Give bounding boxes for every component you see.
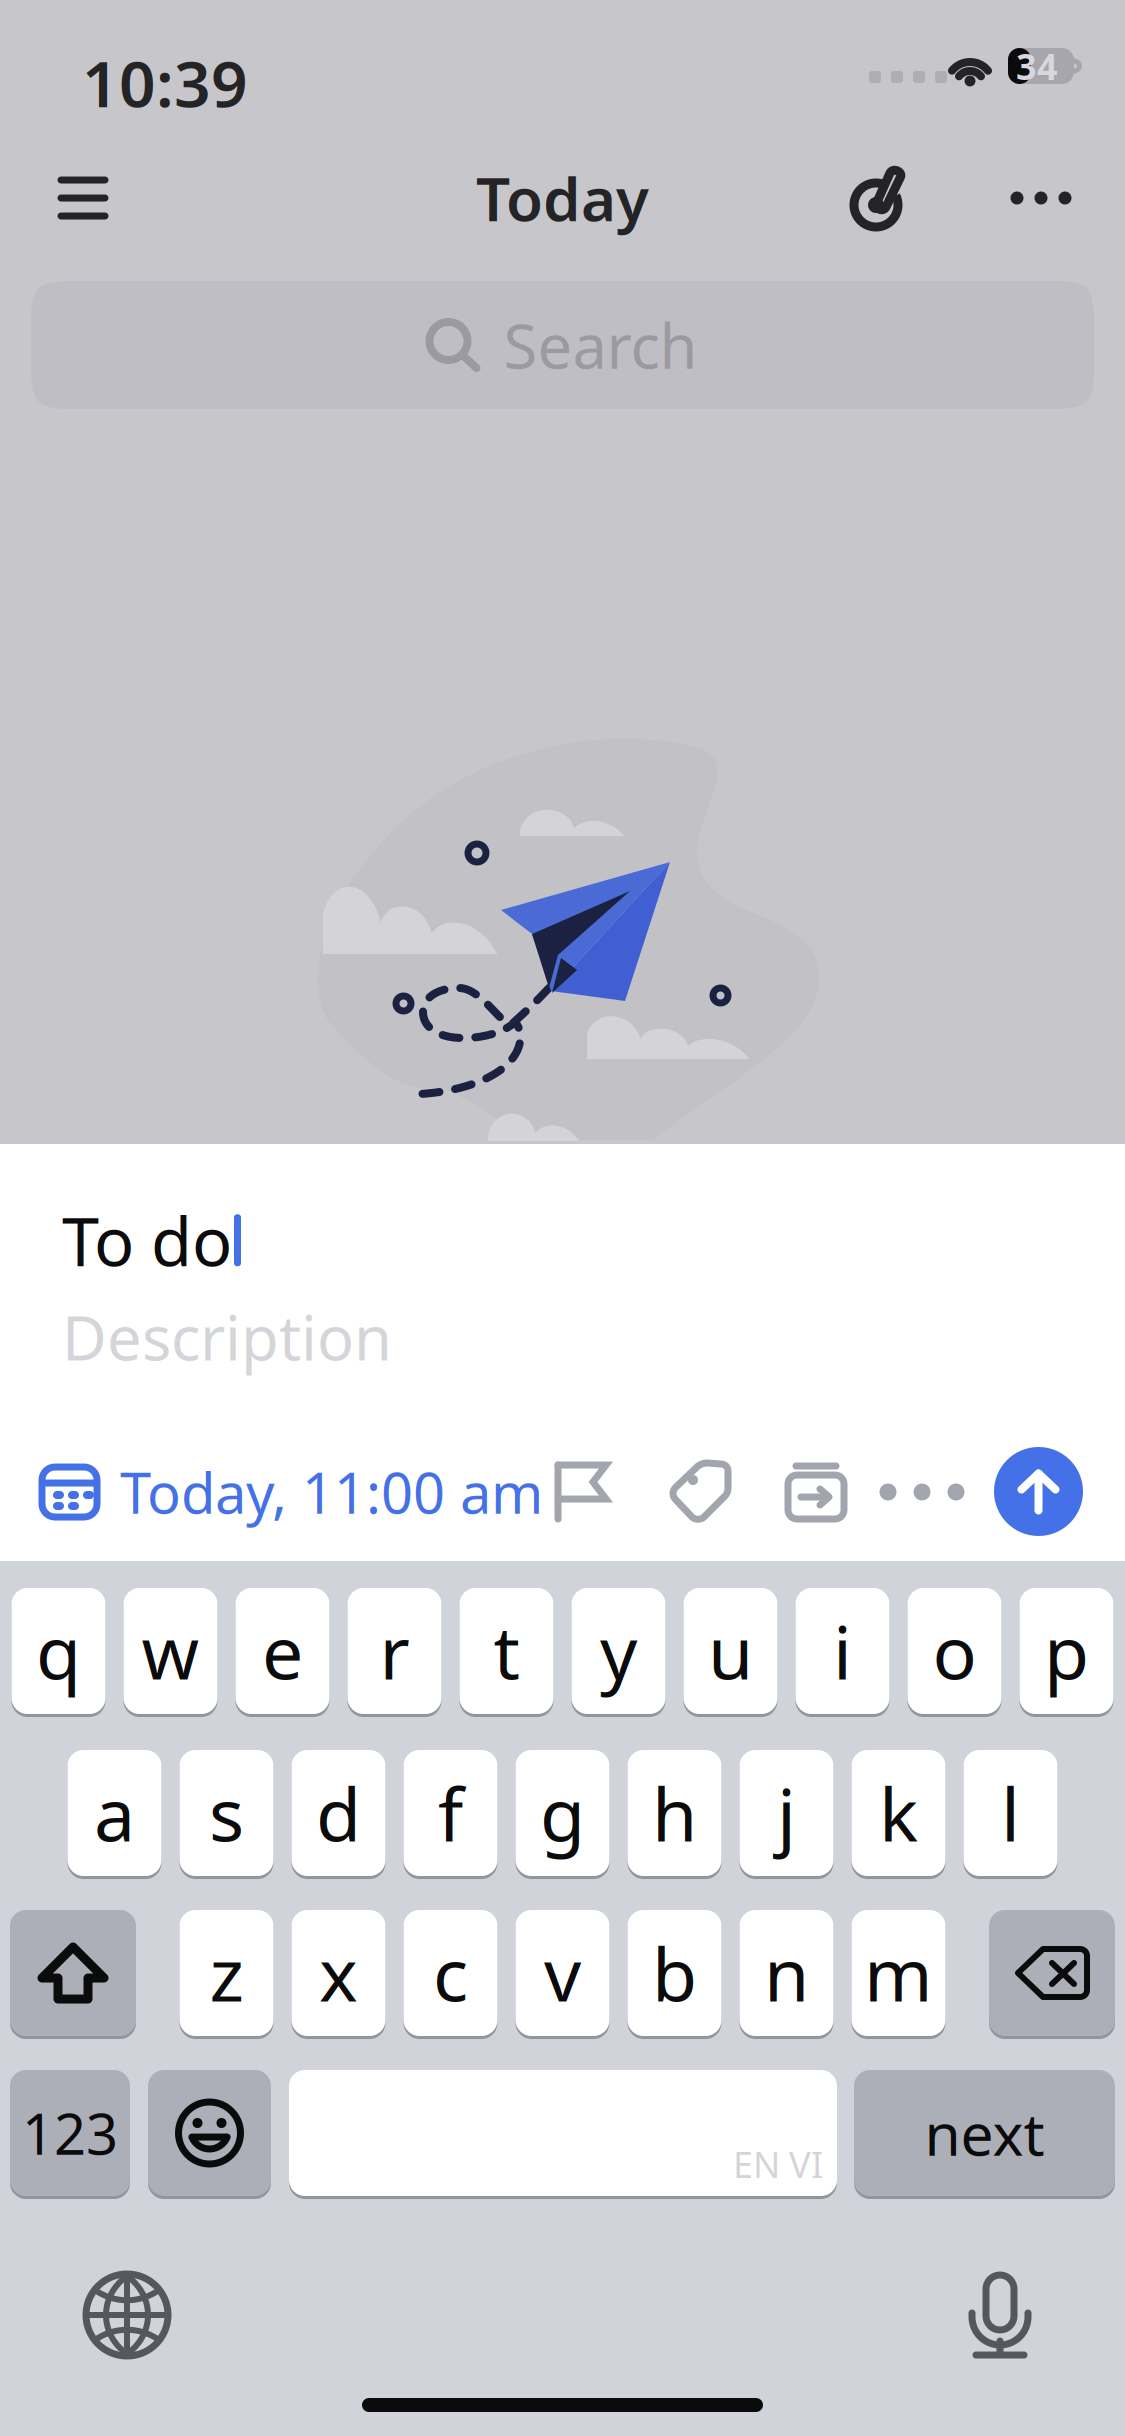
button[interactable] [10, 1908, 136, 2038]
staticText: k [879, 1764, 918, 1862]
button[interactable]: Move to project [770, 1446, 862, 1538]
staticText: e [262, 1602, 303, 1700]
staticText: Description [62, 1296, 392, 1377]
staticText: x [319, 1924, 358, 2022]
staticText: w [141, 1602, 199, 1700]
button[interactable]: v [515, 1908, 609, 2038]
staticText: t [493, 1602, 519, 1700]
button[interactable]: Add task [994, 1447, 1083, 1536]
button[interactable]: s [179, 1748, 273, 1878]
button[interactable]: next [854, 2068, 1115, 2198]
button[interactable]: u [683, 1586, 777, 1716]
button[interactable]: h [627, 1748, 721, 1878]
button[interactable]: d [291, 1748, 385, 1878]
button[interactable]: Today, 11:00 am [42, 1446, 543, 1538]
staticText: v [544, 1924, 581, 2022]
button[interactable]: 123 [10, 2068, 130, 2198]
staticText: y [600, 1602, 637, 1700]
staticText: p [1044, 1602, 1089, 1700]
button[interactable]: i [795, 1586, 889, 1716]
staticText: d [316, 1764, 361, 1862]
button[interactable]: b [627, 1908, 721, 2038]
staticText: u [708, 1602, 753, 1700]
button[interactable]: Menu [28, 143, 138, 253]
staticText: a [94, 1764, 135, 1862]
button[interactable]: p [1019, 1586, 1113, 1716]
staticText: s [209, 1764, 244, 1862]
button[interactable]: g [515, 1748, 609, 1878]
button[interactable] [989, 1908, 1115, 2038]
staticText: To do [62, 1196, 232, 1284]
button[interactable]: t [459, 1586, 553, 1716]
staticText: g [540, 1764, 585, 1862]
staticText: f [438, 1764, 463, 1862]
staticText: EN VI [733, 2140, 823, 2188]
button[interactable]: Change keyboard [72, 2260, 182, 2370]
button[interactable]: l [963, 1748, 1057, 1878]
staticText: z [209, 1924, 243, 2022]
staticText: j [777, 1764, 796, 1862]
button[interactable]: c [403, 1908, 497, 2038]
button[interactable] [148, 2068, 271, 2198]
button[interactable]: r [347, 1586, 441, 1716]
button[interactable]: w [123, 1586, 217, 1716]
staticText: next [924, 2094, 1044, 2172]
button[interactable]: o [907, 1586, 1001, 1716]
staticText: l [1001, 1764, 1020, 1862]
button[interactable]: More [986, 143, 1096, 253]
staticText: 10:39 [82, 40, 248, 125]
staticText: q [36, 1602, 81, 1700]
button[interactable]: Labels [656, 1446, 748, 1538]
staticText: r [379, 1602, 409, 1700]
button[interactable]: n [739, 1908, 833, 2038]
button[interactable]: f [403, 1748, 497, 1878]
button[interactable]: a [67, 1748, 161, 1878]
button[interactable]: More options [876, 1446, 968, 1538]
staticText: Today [476, 158, 649, 238]
button[interactable]: Priority [536, 1446, 628, 1538]
staticText: n [764, 1924, 809, 2022]
staticText: 123 [22, 2096, 118, 2170]
button[interactable]: q [11, 1586, 105, 1716]
staticText: o [932, 1602, 976, 1700]
staticText: i [833, 1602, 852, 1700]
staticText: c [433, 1924, 468, 2022]
button[interactable]: x [291, 1908, 385, 2038]
button[interactable]: EN VI [289, 2068, 837, 2198]
button[interactable]: Dictate [945, 2260, 1055, 2370]
staticText: h [652, 1764, 697, 1862]
staticText: m [864, 1924, 933, 2022]
button[interactable]: Focus [823, 143, 933, 253]
button[interactable]: y [571, 1586, 665, 1716]
button[interactable]: e [235, 1586, 329, 1716]
staticText: b [652, 1924, 697, 2022]
button[interactable]: m [851, 1908, 945, 2038]
staticText: Today, 11:00 am [120, 1455, 543, 1529]
staticText: 34 [1016, 42, 1058, 90]
button[interactable]: z [179, 1908, 273, 2038]
button[interactable]: k [851, 1748, 945, 1878]
staticText: Search [503, 304, 697, 386]
button[interactable]: j [739, 1748, 833, 1878]
